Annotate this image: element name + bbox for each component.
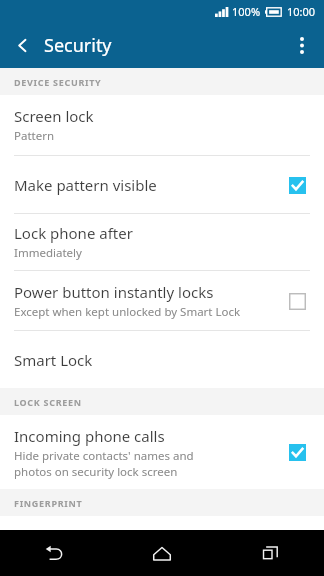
staticText: Immediately: [14, 245, 312, 261]
staticText: Pattern: [14, 128, 312, 144]
button[interactable]: Home: [108, 530, 216, 576]
button[interactable]: Back: [0, 530, 108, 576]
staticText: Smart Lock: [14, 350, 93, 370]
button[interactable]: Smart Lock: [0, 331, 324, 388]
staticText: Make pattern visible: [14, 175, 157, 195]
staticText: LOCK SCREEN: [14, 396, 82, 408]
staticText: Hide private contacts' names and photos …: [14, 448, 227, 479]
staticText: Screen lock: [14, 106, 94, 126]
staticText: DEVICE SECURITY: [14, 76, 102, 88]
button[interactable]: Recent apps: [216, 530, 324, 576]
staticText: FINGERPRINT: [14, 497, 83, 509]
button[interactable]: Power button instantly locks: [282, 286, 312, 316]
staticText: 10:00: [287, 4, 316, 19]
button[interactable]: Screen lock: [0, 95, 324, 155]
button[interactable]: Power button instantly locks: [0, 271, 324, 330]
staticText: Power button instantly locks: [14, 282, 214, 302]
button[interactable]: Navigate up: [0, 23, 44, 67]
staticText: Except when kept unlocked by Smart Lock: [14, 304, 274, 320]
button[interactable]: More options: [280, 23, 324, 67]
button[interactable]: Make pattern visible: [0, 156, 324, 213]
staticText: Lock phone after: [14, 223, 133, 243]
button[interactable]: Make pattern visible: [282, 170, 312, 200]
staticText: Incoming phone calls: [14, 426, 165, 446]
button[interactable]: Lock phone after: [0, 214, 324, 270]
button[interactable]: Incoming phone calls: [282, 437, 312, 467]
button[interactable]: Incoming phone calls: [0, 415, 324, 489]
staticText: Security: [44, 33, 112, 58]
staticText: 100%: [232, 4, 261, 19]
